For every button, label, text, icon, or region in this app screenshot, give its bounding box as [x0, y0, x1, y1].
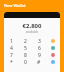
button[interactable]: 6	[32, 45, 46, 51]
button[interactable]: 2	[18, 38, 32, 44]
button[interactable]: 5	[18, 45, 32, 51]
button[interactable]: action	[46, 45, 60, 51]
staticText: 0	[24, 59, 27, 65]
button[interactable]: #	[32, 59, 46, 65]
staticText: 5	[24, 45, 27, 51]
staticText: 8	[24, 52, 27, 58]
staticText: 4	[10, 45, 13, 51]
button[interactable]: action	[46, 52, 60, 58]
button[interactable]: 7	[4, 52, 18, 58]
button[interactable]: *	[4, 59, 18, 65]
staticText: €2,800	[4, 22, 60, 30]
button[interactable]: 3	[32, 38, 46, 44]
staticText: New Wallet	[4, 3, 26, 8]
button[interactable]: action	[46, 38, 60, 44]
button[interactable]: 8	[18, 52, 32, 58]
staticText: *	[10, 59, 13, 65]
staticText: 9	[38, 52, 41, 58]
staticText: #	[37, 59, 41, 65]
button[interactable]: action	[46, 59, 60, 65]
button[interactable]: 0	[18, 59, 32, 65]
staticText: 6	[38, 45, 41, 51]
button[interactable]: 9	[32, 52, 46, 58]
button[interactable]: 4	[4, 45, 18, 51]
button[interactable]: 1	[4, 38, 18, 44]
staticText: 2	[24, 38, 27, 44]
staticText: 7	[10, 52, 13, 58]
staticText: 3	[38, 38, 41, 44]
staticText: available	[4, 30, 60, 34]
staticText: 1	[10, 38, 13, 44]
